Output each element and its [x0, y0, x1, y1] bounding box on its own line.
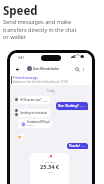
staticText: 260 kB — [27, 124, 34, 127]
button[interactable]: Search — [73, 65, 81, 73]
staticText: 25.34 € — [40, 163, 60, 171]
staticText: Today — [10, 89, 92, 93]
staticText: Audience for the Site Saturday at 17:00 — [13, 80, 68, 84]
staticText: You sent — [45, 160, 55, 163]
staticText: 09:22 — [81, 145, 86, 148]
staticText: Dan Mendelsohn — [33, 67, 60, 71]
staticText: Speed — [3, 3, 38, 19]
staticText: Pinned message — [13, 76, 39, 80]
staticText: Hi! How are you? — [20, 98, 42, 102]
staticText: Sending an invitation — [20, 111, 48, 115]
staticText: Send messages and make transfers directl… — [3, 18, 81, 40]
staticText: Fine. Working!! — [58, 104, 79, 108]
staticText: Thanks! — [69, 144, 80, 148]
button[interactable]: More options — [79, 65, 87, 73]
staticText: 09:12 — [43, 100, 48, 102]
staticText: card — [48, 171, 53, 174]
button[interactable]: Back — [13, 65, 21, 73]
staticText: Invitation2593.pdf — [27, 120, 50, 124]
staticText: 09:14 — [80, 105, 86, 108]
staticText: 2 — [22, 135, 24, 138]
staticText: 9:41 — [18, 56, 24, 60]
